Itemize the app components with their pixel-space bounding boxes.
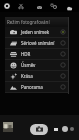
button[interactable]: Úsměv (5, 60, 69, 71)
staticText: Jeden snímek (21, 29, 50, 35)
staticText: Režim fotografování (7, 19, 50, 25)
button[interactable]: Panorama (5, 82, 69, 93)
button[interactable]: Take photo (30, 124, 48, 135)
button[interactable]: Record video (53, 126, 58, 132)
staticText: Krása (21, 73, 33, 79)
button[interactable]: Effects (62, 126, 68, 132)
button[interactable]: Sériové snímání (5, 38, 69, 49)
button[interactable]: Switch camera (70, 127, 74, 131)
button[interactable]: Krása (5, 71, 69, 82)
staticText: Sériové snímání (21, 40, 55, 46)
button[interactable]: Jeden snímek (5, 27, 69, 38)
staticText: Úsměv (21, 62, 36, 68)
staticText: Panorama (21, 84, 43, 90)
staticText: HDR (21, 51, 31, 57)
button[interactable]: HDR (5, 49, 69, 60)
button[interactable]: Gallery (3, 122, 13, 133)
